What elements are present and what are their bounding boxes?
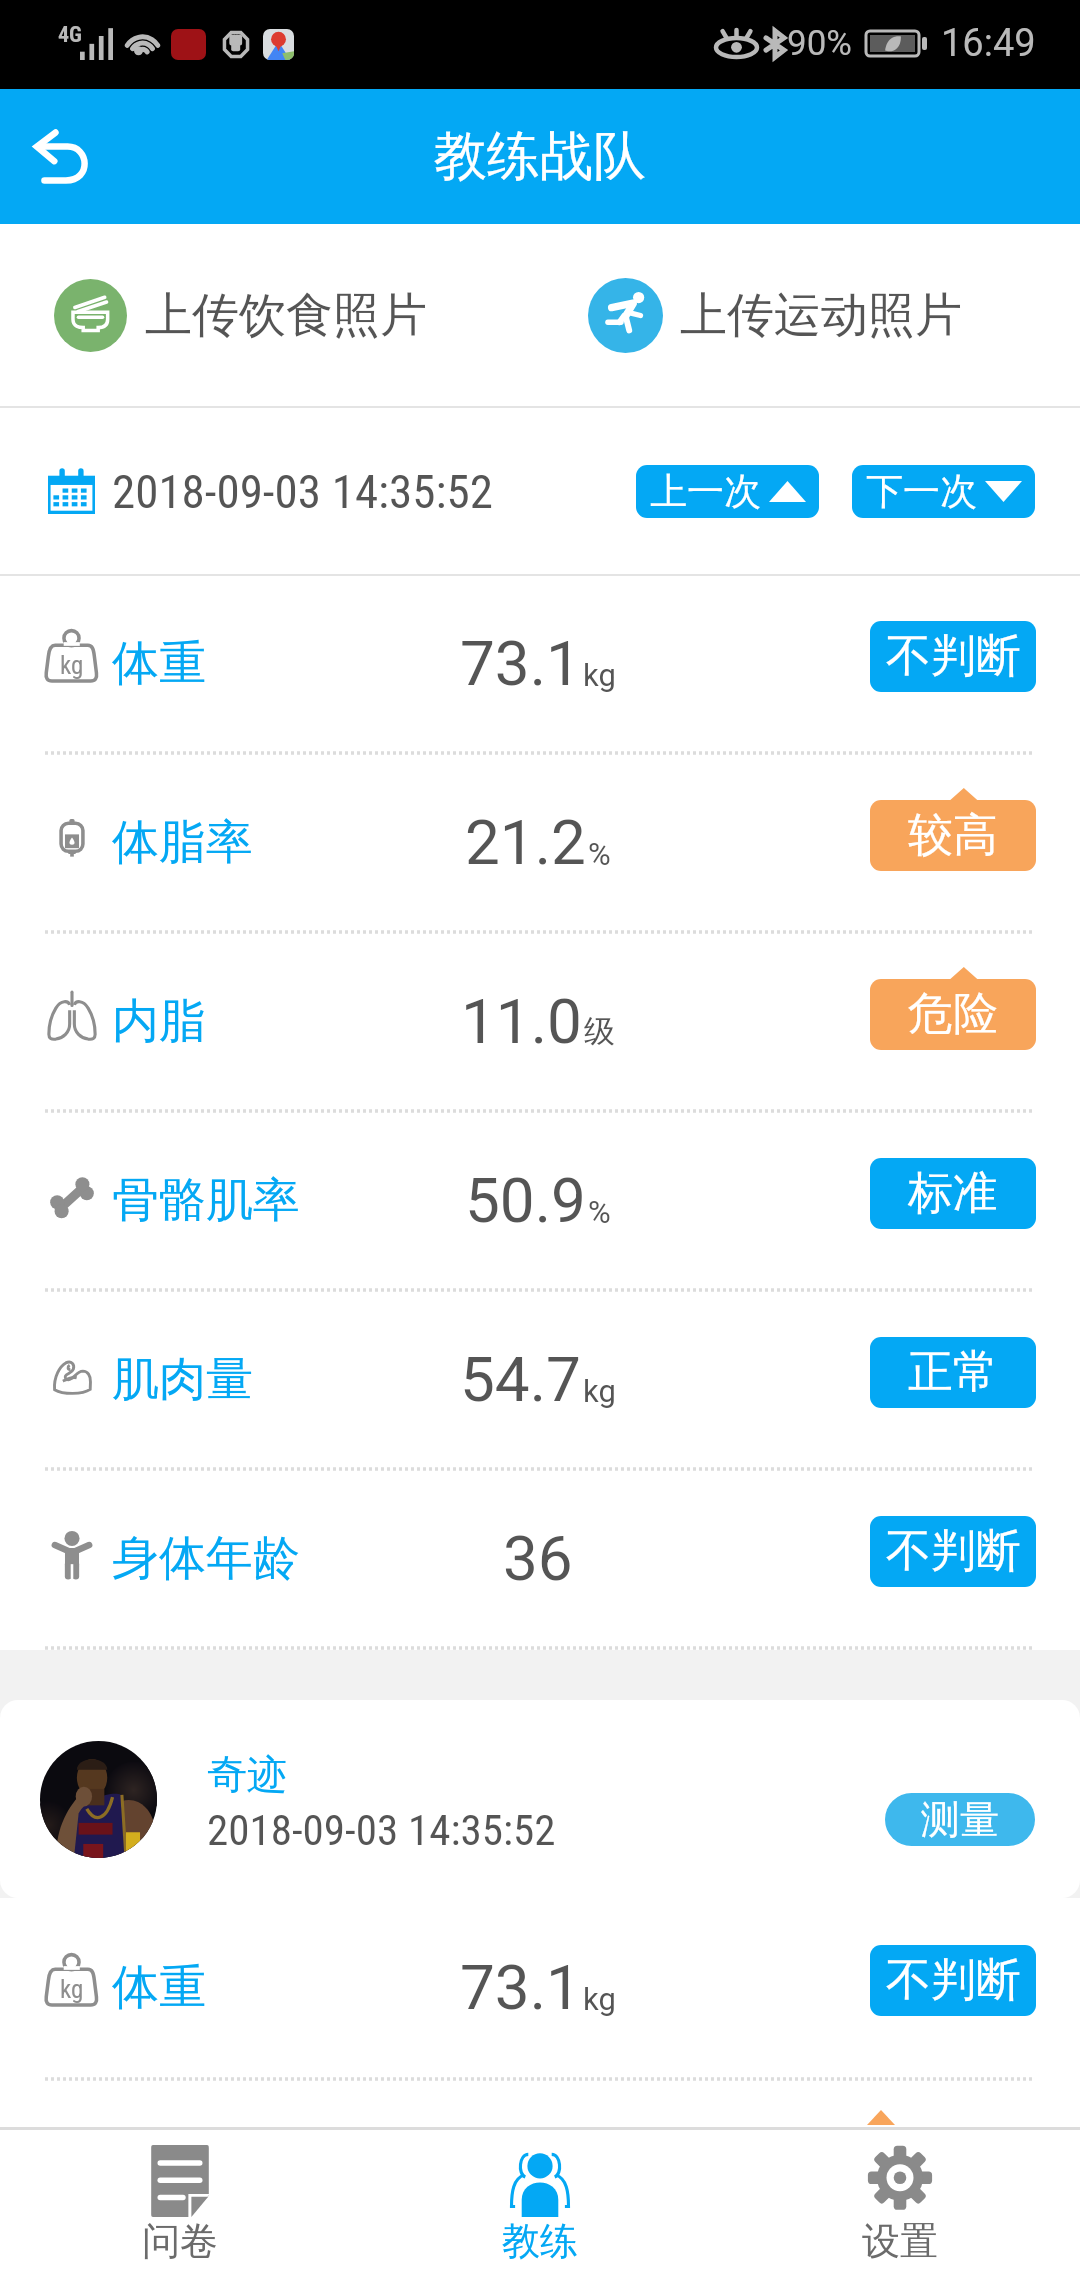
button[interactable]: 奇迹 xyxy=(0,1700,1080,1898)
staticText: kg xyxy=(60,1975,84,2004)
staticText: 36 xyxy=(503,1522,573,1595)
staticText: 2018-09-03 14:35:52 xyxy=(112,464,493,519)
staticText: 测量 xyxy=(921,1795,999,1844)
button[interactable]: 上传运动照片 xyxy=(588,224,1008,406)
staticText: 级 xyxy=(584,1012,615,1051)
staticText: 内脂 xyxy=(112,992,206,1051)
button[interactable]: 测量 xyxy=(885,1793,1035,1846)
staticText: 骨骼肌率 xyxy=(112,1171,300,1230)
staticText: 4G xyxy=(58,22,82,48)
staticText: 体脂率 xyxy=(112,813,253,872)
staticText: 奇迹 xyxy=(207,1749,287,1799)
button[interactable]: 不判断 xyxy=(870,621,1036,692)
staticText: 50.9 xyxy=(465,1164,586,1237)
button[interactable]: 身体年龄 xyxy=(0,1471,1080,1646)
staticText: 73.1 xyxy=(460,627,581,700)
staticText: 73.1 xyxy=(460,1951,581,2024)
staticText: 标准 xyxy=(908,1165,998,1222)
staticText: 肌肉量 xyxy=(112,1350,253,1409)
staticText: 90% xyxy=(787,23,852,64)
staticText: 教练 xyxy=(502,2217,578,2265)
staticText: 16:49 xyxy=(941,21,1036,66)
button[interactable]: 不判断 xyxy=(870,1516,1036,1587)
button[interactable]: 下一次 xyxy=(852,465,1035,518)
button[interactable]: 问卷 xyxy=(0,2130,360,2280)
staticText: 11.0 xyxy=(461,985,582,1058)
button[interactable]: 体脂率 xyxy=(0,755,1080,930)
staticText: kg xyxy=(60,651,84,680)
staticText: 54.7 xyxy=(460,1343,581,1416)
staticText: 不判断 xyxy=(886,1523,1021,1580)
staticText: 2018-09-03 14:35:52 xyxy=(207,1805,556,1855)
staticText: 问卷 xyxy=(142,2217,218,2265)
button[interactable]: 标准 xyxy=(870,1158,1036,1229)
button[interactable]: 危险 xyxy=(870,979,1036,1050)
button[interactable]: 教练 xyxy=(360,2130,720,2280)
staticText: kg xyxy=(583,1981,616,2017)
staticText: 设置 xyxy=(862,2217,938,2265)
staticText: 上传运动照片 xyxy=(680,286,962,345)
button[interactable]: 较高 xyxy=(870,800,1036,871)
button[interactable]: 设置 xyxy=(720,2130,1080,2280)
staticText: 不判断 xyxy=(886,1952,1021,2009)
button[interactable]: 正常 xyxy=(870,1337,1036,1408)
staticText: 21.2 xyxy=(465,806,586,879)
button[interactable]: Back xyxy=(0,89,130,224)
staticText: 身体年龄 xyxy=(112,1529,300,1588)
staticText: kg xyxy=(583,1373,616,1409)
staticText: 上一次 xyxy=(650,468,761,515)
staticText: kg xyxy=(583,657,616,693)
staticText: 教练战队 xyxy=(434,123,646,190)
staticText: 体重 xyxy=(112,634,206,693)
staticText: 危险 xyxy=(908,986,998,1043)
button[interactable]: 不判断 xyxy=(870,1945,1036,2016)
staticText: 下一次 xyxy=(866,468,977,515)
button[interactable]: 上传饮食照片 xyxy=(0,224,480,406)
button[interactable]: 骨骼肌率 xyxy=(0,1113,1080,1288)
staticText: 不判断 xyxy=(886,628,1021,685)
staticText: 上传饮食照片 xyxy=(145,286,427,345)
staticText: % xyxy=(588,836,611,872)
button[interactable]: kg xyxy=(0,576,1080,751)
button[interactable]: 内脂 xyxy=(0,934,1080,1109)
staticText: 正常 xyxy=(908,1344,998,1401)
button[interactable]: 肌肉量 xyxy=(0,1292,1080,1467)
staticText: % xyxy=(588,1194,611,1230)
button[interactable]: kg xyxy=(0,1898,1080,2077)
button[interactable]: 上一次 xyxy=(636,465,819,518)
staticText: 较高 xyxy=(908,807,998,864)
staticText: 体重 xyxy=(112,1958,206,2017)
